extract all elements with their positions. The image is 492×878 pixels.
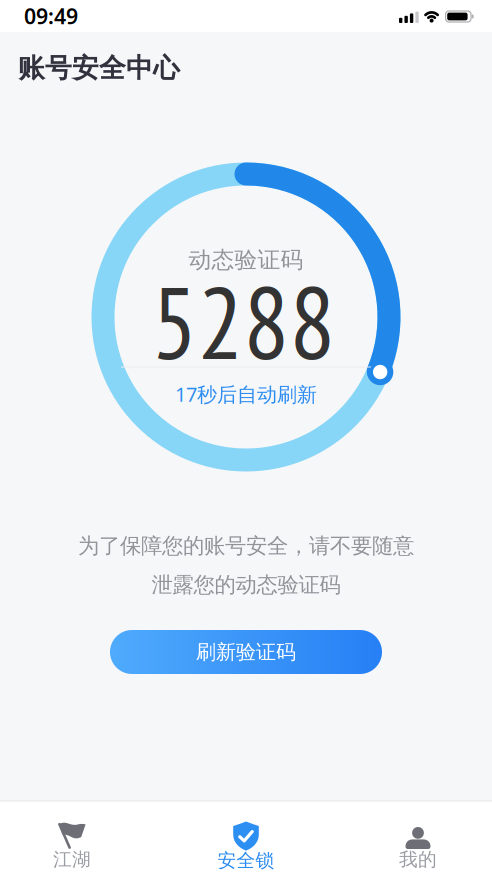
staticText: 泄露您的动态验证码	[151, 572, 340, 598]
staticText: 09:49	[24, 2, 78, 30]
staticText: 账号安全中心	[18, 52, 180, 84]
button[interactable]: 我的	[346, 801, 490, 878]
staticText: 我的	[399, 848, 437, 871]
staticText: 5288	[151, 256, 335, 387]
staticText: 17秒后自动刷新	[175, 381, 317, 407]
staticText: 江湖	[53, 848, 91, 871]
staticText: 为了保障您的账号安全，请不要随意	[78, 533, 414, 559]
button[interactable]: 江湖	[0, 801, 144, 878]
staticText: 动态验证码	[188, 246, 303, 274]
staticText: 刷新验证码	[196, 640, 296, 664]
button[interactable]: 安全锁	[174, 801, 318, 878]
button[interactable]: 刷新验证码	[110, 630, 382, 674]
staticText: 安全锁	[217, 849, 274, 872]
